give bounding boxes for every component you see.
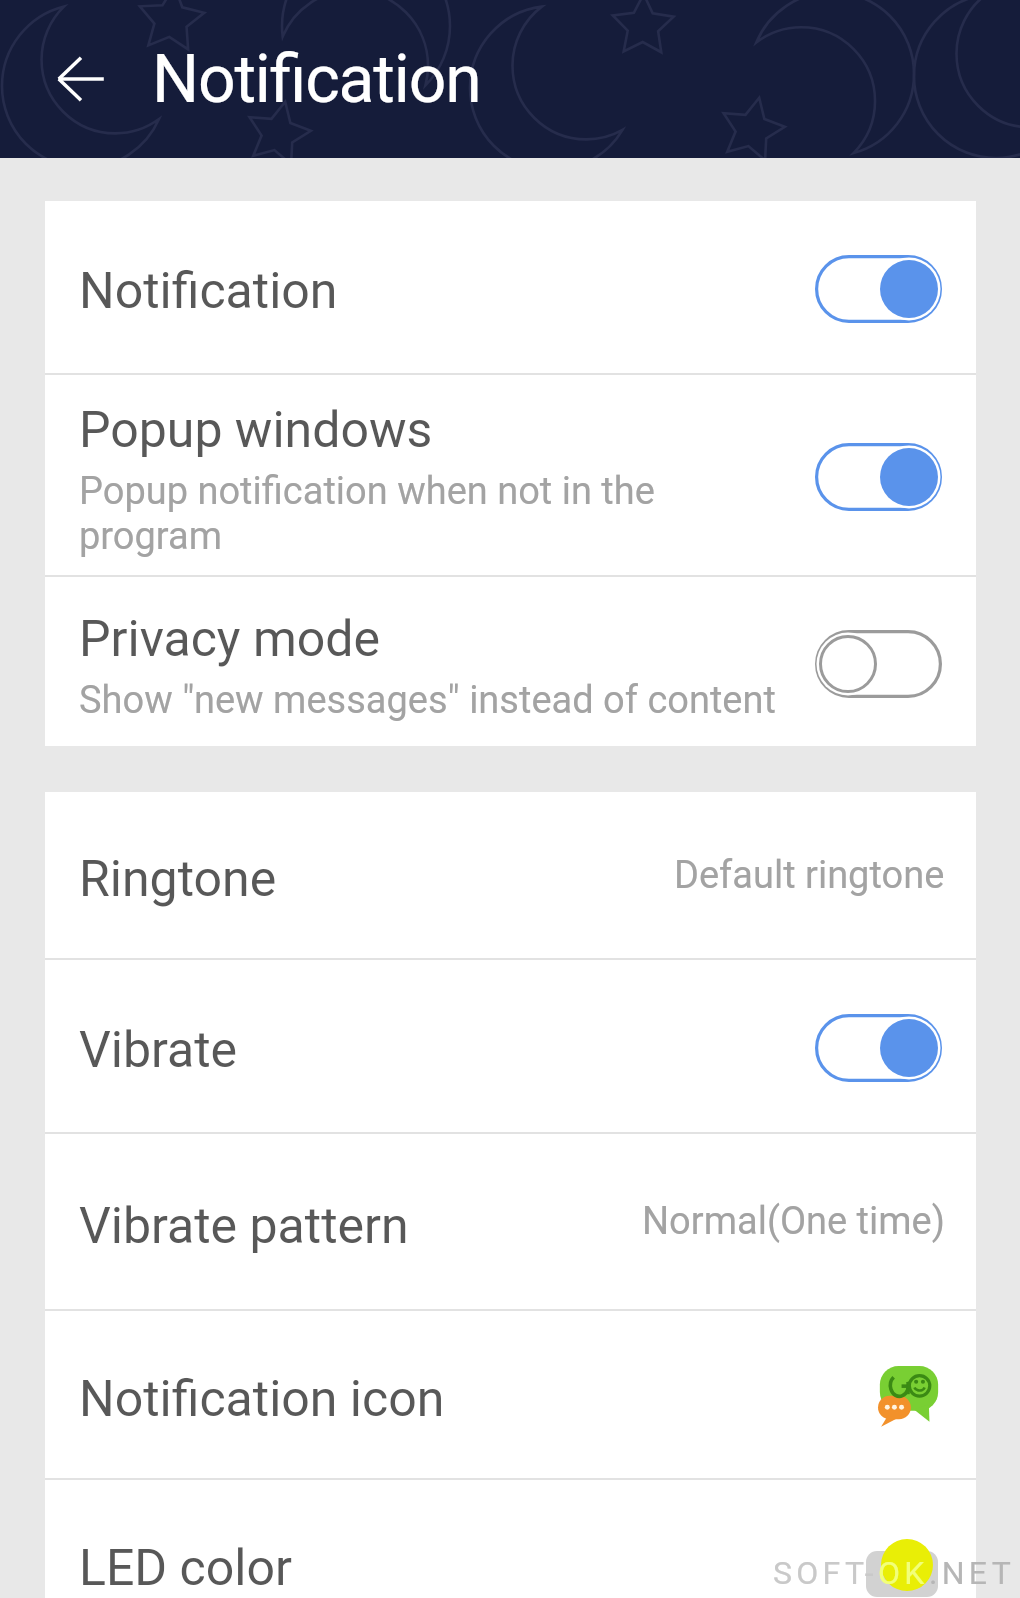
button[interactable]: Vibrate xyxy=(45,960,976,1132)
staticText: SOFT- xyxy=(773,1554,878,1592)
staticText: Normal(One time) xyxy=(642,1199,945,1244)
staticText: Notification xyxy=(79,262,338,321)
button[interactable]: Switch on xyxy=(815,438,947,512)
button[interactable]: Notification icon xyxy=(45,1311,976,1478)
button[interactable]: LED color xyxy=(45,1480,976,1598)
button[interactable]: Vibrate pattern xyxy=(45,1134,976,1309)
staticText: Vibrate pattern xyxy=(79,1197,409,1256)
button[interactable]: Switch on xyxy=(815,250,947,324)
staticText: Vibrate xyxy=(79,1021,238,1080)
staticText: Default ringtone xyxy=(674,853,945,898)
staticText: LED color xyxy=(79,1539,292,1598)
button[interactable]: Ringtone xyxy=(45,792,976,958)
button[interactable]: Switch off xyxy=(815,625,947,699)
button[interactable]: Popup windows xyxy=(45,375,976,575)
staticText: Show "new messages" instead of content xyxy=(79,678,776,723)
button[interactable]: Notification xyxy=(45,201,976,373)
staticText: Ringtone xyxy=(79,850,277,909)
staticText: .NET xyxy=(929,1554,1016,1592)
staticText: Popup notification when not in the progr… xyxy=(79,469,655,559)
staticText: Privacy mode xyxy=(79,610,381,669)
button[interactable]: Privacy mode xyxy=(45,577,976,746)
staticText: Notification xyxy=(152,41,481,118)
staticText: Popup windows xyxy=(79,401,433,460)
button[interactable]: Back xyxy=(0,0,152,158)
button[interactable]: Switch on xyxy=(815,1009,947,1083)
staticText: OK xyxy=(878,1554,929,1592)
staticText: Notification icon xyxy=(79,1370,445,1429)
